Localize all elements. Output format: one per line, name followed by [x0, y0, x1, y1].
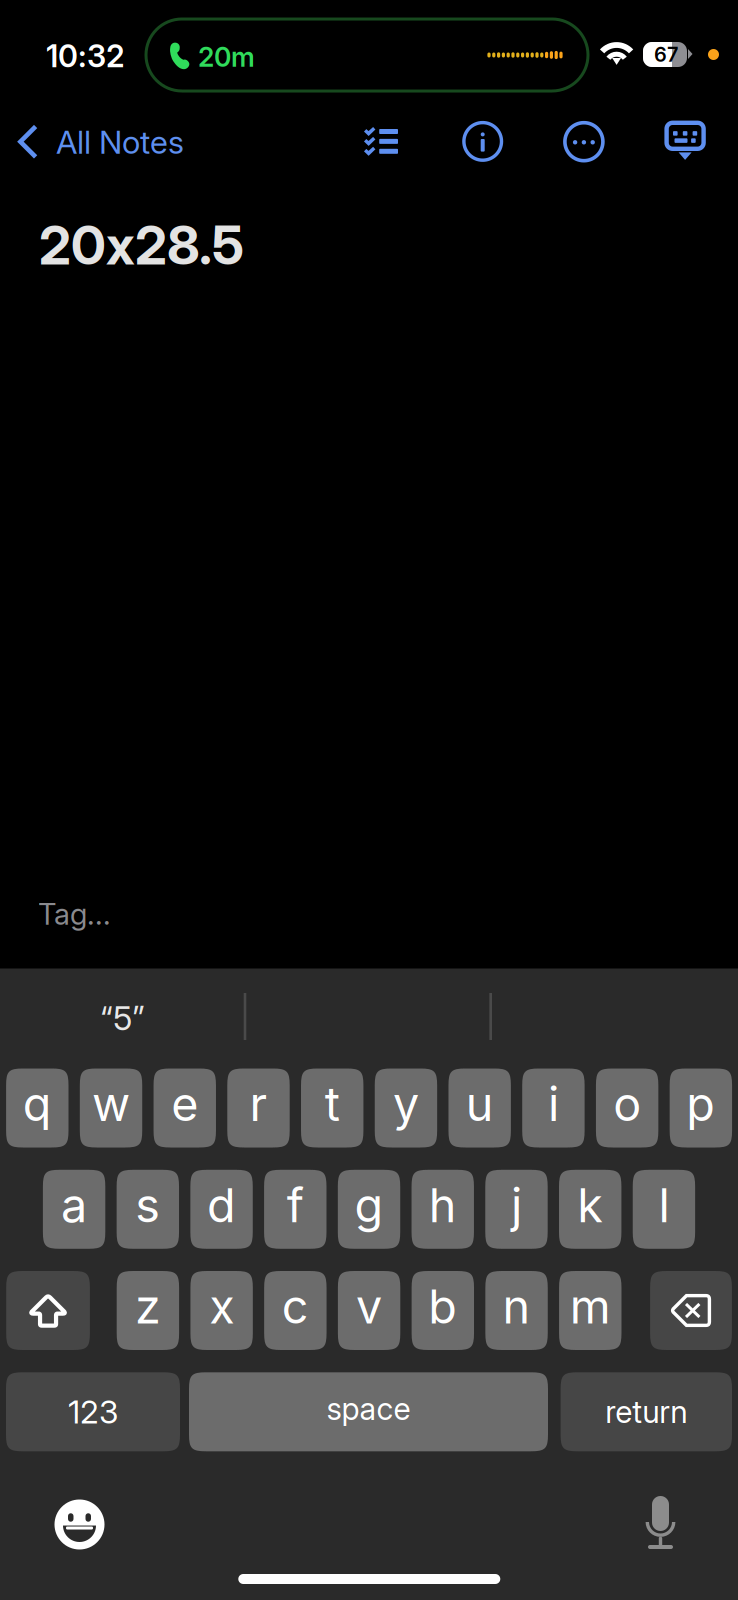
button[interactable]: j: [485, 1170, 548, 1249]
staticText: j: [511, 1177, 522, 1234]
button[interactable]: k: [559, 1170, 621, 1249]
button[interactable]: Emoji: [54, 1499, 104, 1549]
button[interactable]: f: [264, 1170, 326, 1249]
staticText: h: [429, 1177, 457, 1234]
staticText: return: [605, 1393, 687, 1430]
staticText: t: [325, 1076, 340, 1132]
staticText: 10:32: [46, 37, 125, 74]
button[interactable]: q: [6, 1068, 68, 1147]
staticText: Tag...: [38, 896, 111, 932]
staticText: q: [23, 1076, 52, 1132]
staticText: n: [503, 1278, 531, 1335]
staticText: z: [135, 1278, 161, 1335]
staticText: c: [282, 1278, 309, 1335]
button[interactable]: Hide keyboard: [667, 123, 704, 160]
staticText: y: [393, 1076, 419, 1132]
button[interactable]: Info: [464, 123, 501, 160]
staticText: f: [287, 1177, 304, 1234]
staticText: g: [354, 1177, 383, 1234]
staticText: v: [356, 1278, 382, 1335]
button[interactable]: i: [522, 1068, 585, 1147]
staticText: All Notes: [56, 123, 184, 161]
staticText: x: [209, 1278, 234, 1335]
button[interactable]: l: [633, 1170, 695, 1249]
staticText: e: [171, 1076, 198, 1132]
button[interactable]: s: [117, 1170, 179, 1249]
staticText: s: [135, 1177, 160, 1234]
staticText: a: [61, 1177, 87, 1234]
button[interactable]: Delete: [650, 1271, 732, 1350]
staticText: r: [249, 1076, 267, 1132]
button[interactable]: More options: [565, 123, 603, 161]
button[interactable]: y: [375, 1068, 437, 1147]
button[interactable]: w: [80, 1068, 142, 1147]
button[interactable]: u: [448, 1068, 511, 1147]
button[interactable]: Shift: [6, 1271, 90, 1350]
staticText: p: [686, 1076, 715, 1132]
button[interactable]: o: [596, 1068, 658, 1147]
button[interactable]: e: [154, 1068, 216, 1147]
button[interactable]: n: [485, 1271, 548, 1350]
button[interactable]: c: [264, 1271, 327, 1350]
staticText: i: [548, 1076, 559, 1132]
button[interactable]: d: [190, 1170, 253, 1249]
button[interactable]: p: [670, 1068, 732, 1147]
button[interactable]: r: [227, 1068, 290, 1147]
button[interactable]: Dictation: [644, 1496, 676, 1552]
button[interactable]: x: [190, 1271, 253, 1350]
button[interactable]: All Notes: [17, 114, 247, 170]
button[interactable]: g: [338, 1170, 400, 1249]
staticText: 67: [654, 42, 678, 67]
staticText: 123: [68, 1392, 118, 1431]
button[interactable]: m: [559, 1271, 621, 1350]
button[interactable]: Checklist: [364, 127, 398, 156]
staticText: w: [92, 1076, 130, 1132]
button[interactable]: 123: [6, 1372, 180, 1451]
staticText: 20x28.5: [39, 213, 244, 277]
button[interactable]: z: [117, 1271, 179, 1350]
button[interactable]: t: [301, 1068, 363, 1147]
staticText: d: [207, 1177, 236, 1234]
staticText: k: [577, 1177, 603, 1234]
staticText: l: [658, 1177, 669, 1234]
button[interactable]: h: [412, 1170, 474, 1249]
staticText: m: [570, 1278, 611, 1335]
staticText: b: [428, 1278, 457, 1335]
button[interactable]: return: [561, 1372, 732, 1451]
staticText: 20m: [198, 41, 255, 73]
button[interactable]: b: [412, 1271, 474, 1350]
button[interactable]: space: [189, 1372, 548, 1451]
button[interactable]: v: [338, 1271, 400, 1350]
staticText: space: [326, 1390, 410, 1427]
staticText: u: [466, 1076, 494, 1132]
button[interactable]: a: [43, 1170, 105, 1249]
staticText: o: [613, 1076, 641, 1132]
staticText: “5”: [100, 998, 145, 1038]
